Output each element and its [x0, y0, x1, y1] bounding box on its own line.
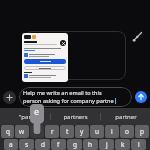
staticText: h	[88, 140, 93, 149]
button[interactable]: f	[51, 139, 66, 150]
button[interactable]: k	[115, 139, 130, 150]
staticText: s	[25, 140, 29, 149]
button[interactable]	[24, 59, 66, 64]
button[interactable]: t	[60, 125, 74, 138]
staticText: u	[95, 127, 100, 136]
staticText: partners	[63, 113, 88, 121]
button[interactable]: g	[67, 139, 82, 150]
staticText: Help me write an email to this	[23, 89, 102, 97]
button[interactable]: d	[35, 139, 50, 150]
button[interactable]: Help me write an email to this	[19, 87, 132, 107]
staticText: d	[41, 140, 45, 149]
staticText: g	[73, 140, 77, 149]
staticText: j	[106, 140, 108, 149]
button[interactable]: q	[1, 125, 14, 138]
button[interactable]: j	[99, 139, 114, 150]
button[interactable]: Close	[60, 40, 66, 46]
staticText: t	[66, 127, 69, 136]
staticText: r	[51, 127, 54, 136]
staticText: y	[80, 127, 84, 136]
staticText: i	[111, 127, 113, 136]
button[interactable]: s	[19, 139, 34, 150]
button[interactable]: Close	[22, 33, 68, 82]
other: Drag cursor	[131, 31, 143, 43]
button[interactable]: p	[135, 125, 149, 138]
staticText: partner	[115, 113, 137, 121]
staticText: f	[57, 140, 60, 149]
button[interactable]: partners	[51, 108, 100, 125]
staticText: q	[6, 127, 10, 136]
staticText: o	[125, 127, 129, 136]
button[interactable]: w	[15, 125, 29, 138]
staticText: e	[34, 105, 40, 117]
button[interactable]: i	[105, 125, 119, 138]
button[interactable]: Add attachment	[3, 91, 16, 104]
staticText: "par	[19, 113, 31, 121]
button[interactable]: l	[131, 139, 146, 150]
button[interactable]: Send	[135, 91, 147, 103]
button[interactable]: y	[75, 125, 89, 138]
button[interactable]: u	[90, 125, 104, 138]
staticText: person asking for company partne	[23, 97, 114, 105]
staticText: k	[121, 140, 125, 149]
button[interactable]: r	[45, 125, 59, 138]
button[interactable]: partner	[101, 108, 150, 125]
button[interactable]	[30, 125, 44, 138]
button[interactable]: a	[4, 139, 18, 150]
staticText: w	[19, 127, 25, 136]
button[interactable]	[24, 66, 66, 70]
button[interactable]: "par	[0, 108, 50, 125]
button[interactable]: h	[83, 139, 98, 150]
staticText: l	[138, 140, 140, 149]
staticText: p	[140, 127, 144, 136]
staticText: a	[9, 140, 13, 149]
button[interactable]: o	[120, 125, 134, 138]
